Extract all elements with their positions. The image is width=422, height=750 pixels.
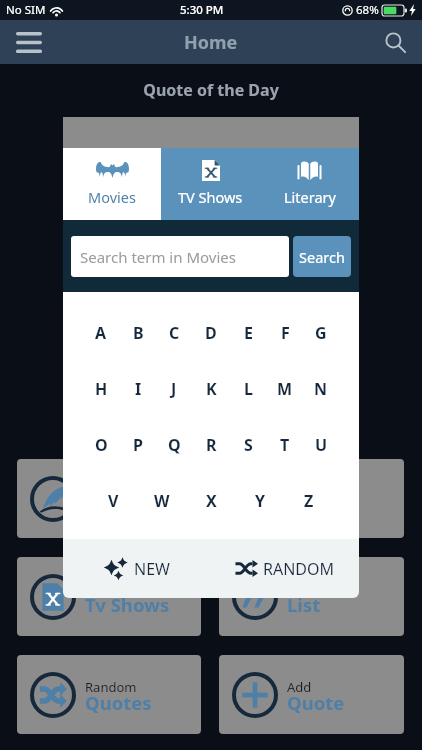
staticText: Quotes bbox=[85, 494, 152, 519]
staticText: NEW bbox=[134, 558, 170, 580]
staticText: G bbox=[315, 322, 327, 344]
button[interactable]: Tv bbox=[219, 459, 404, 538]
button[interactable]: B bbox=[125, 314, 151, 352]
staticText: TV Shows bbox=[178, 187, 243, 207]
button[interactable]: A bbox=[88, 314, 114, 352]
button[interactable]: Literary bbox=[260, 148, 359, 220]
staticText: A bbox=[95, 322, 107, 344]
button[interactable]: I bbox=[125, 370, 151, 408]
staticText: Home bbox=[184, 30, 238, 55]
staticText: V bbox=[108, 490, 119, 512]
button[interactable]: Y bbox=[247, 482, 273, 520]
button[interactable]: V bbox=[100, 482, 126, 520]
staticText: U bbox=[315, 434, 328, 456]
button[interactable]: G bbox=[308, 314, 334, 352]
button[interactable]: U bbox=[308, 426, 334, 464]
staticText: 5:30 PM bbox=[180, 2, 224, 18]
button[interactable]: Quote bbox=[219, 557, 404, 636]
staticText: E bbox=[244, 322, 253, 344]
button[interactable]: S bbox=[235, 426, 261, 464]
button[interactable]: P bbox=[125, 426, 151, 464]
button[interactable]: E bbox=[235, 314, 261, 352]
button[interactable]: Search term in Movies bbox=[71, 236, 289, 277]
button[interactable]: RANDOM bbox=[211, 539, 359, 598]
button[interactable]: Menu bbox=[10, 23, 48, 61]
staticText: Random bbox=[85, 678, 137, 696]
button[interactable]: TV Shows bbox=[161, 148, 260, 220]
staticText: X bbox=[206, 490, 217, 512]
staticText: 68% bbox=[356, 2, 379, 18]
button[interactable]: K bbox=[198, 370, 224, 408]
staticText: D bbox=[205, 322, 217, 344]
staticText: F bbox=[281, 322, 290, 344]
staticText: Quotes bbox=[85, 690, 152, 715]
button[interactable]: Q bbox=[161, 426, 187, 464]
button[interactable]: F bbox=[272, 314, 298, 352]
button[interactable]: Movie bbox=[17, 459, 201, 538]
staticText: P bbox=[133, 434, 143, 456]
button[interactable]: Add bbox=[219, 655, 404, 734]
staticText: W bbox=[154, 490, 170, 512]
staticText: I bbox=[135, 378, 142, 400]
button[interactable]: T bbox=[272, 426, 298, 464]
staticText: Literary bbox=[284, 187, 336, 207]
button[interactable]: O bbox=[88, 426, 114, 464]
staticText: No SIM bbox=[6, 2, 46, 18]
staticText: Z bbox=[304, 490, 314, 512]
button[interactable]: M bbox=[272, 370, 298, 408]
staticText: K bbox=[206, 378, 217, 400]
staticText: Q bbox=[168, 434, 181, 456]
button[interactable]: Movies bbox=[63, 148, 161, 220]
button[interactable]: Watch bbox=[17, 557, 201, 636]
button[interactable]: D bbox=[198, 314, 224, 352]
staticText: Series bbox=[287, 494, 343, 519]
staticText: Movie bbox=[85, 482, 122, 500]
button[interactable]: X bbox=[198, 482, 224, 520]
staticText: H bbox=[95, 378, 108, 400]
button[interactable]: Random bbox=[17, 655, 201, 734]
button[interactable]: R bbox=[198, 426, 224, 464]
button[interactable]: Search bbox=[293, 236, 351, 277]
button[interactable]: J bbox=[161, 370, 187, 408]
button[interactable]: H bbox=[88, 370, 114, 408]
staticText: Movies bbox=[88, 187, 136, 207]
staticText: List bbox=[287, 592, 321, 617]
staticText: Tv Shows bbox=[85, 592, 170, 617]
staticText: Quote bbox=[287, 690, 345, 715]
button[interactable]: L bbox=[235, 370, 261, 408]
staticText: J bbox=[171, 378, 177, 400]
staticText: RANDOM bbox=[263, 558, 335, 580]
staticText: T bbox=[280, 434, 290, 456]
staticText: Add bbox=[287, 678, 312, 696]
staticText: Y bbox=[255, 490, 266, 512]
staticText: B bbox=[133, 322, 144, 344]
button[interactable]: NEW bbox=[63, 539, 211, 598]
staticText: M bbox=[277, 378, 293, 400]
button[interactable]: Search bbox=[376, 23, 414, 61]
staticText: N bbox=[314, 378, 328, 400]
staticText: S bbox=[244, 434, 253, 456]
staticText: Search term in Movies bbox=[80, 247, 236, 267]
button[interactable]: W bbox=[149, 482, 175, 520]
staticText: O bbox=[95, 434, 108, 456]
staticText: C bbox=[169, 322, 180, 344]
button[interactable]: Z bbox=[296, 482, 322, 520]
button[interactable]: C bbox=[161, 314, 187, 352]
staticText: Search bbox=[299, 247, 345, 267]
staticText: Quote of the Day bbox=[0, 79, 422, 101]
staticText: R bbox=[206, 434, 217, 456]
staticText: L bbox=[244, 378, 253, 400]
button[interactable]: N bbox=[308, 370, 334, 408]
